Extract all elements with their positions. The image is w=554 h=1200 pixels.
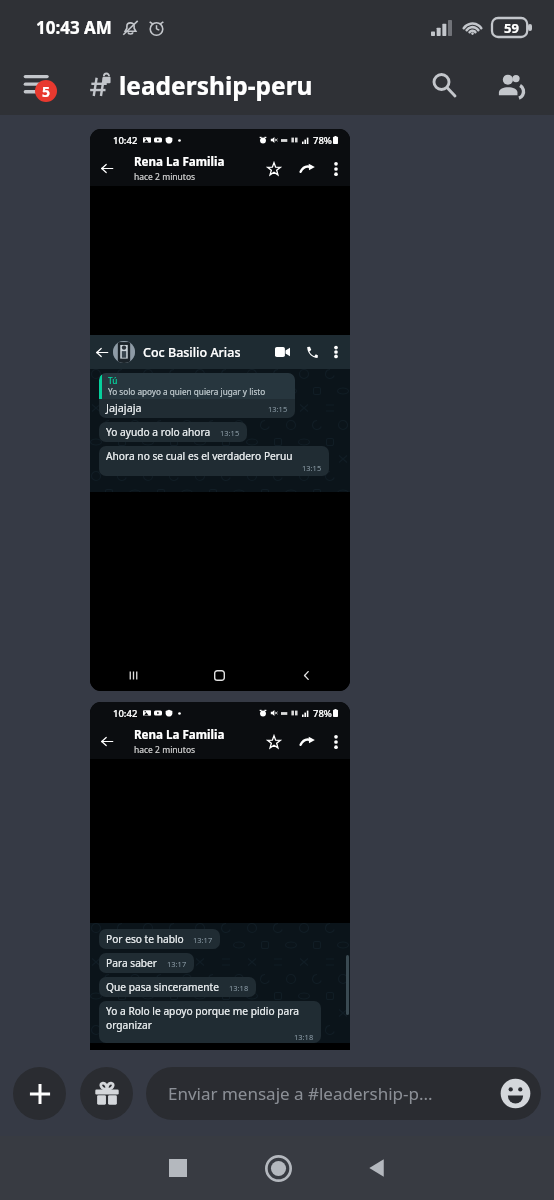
staticText: Coc Basilio Arias [143,344,241,361]
staticText: 13:17 [193,935,213,945]
button[interactable]: Back [352,1143,402,1193]
staticText: 13:15 [220,428,240,438]
staticText: hace 2 minutos [134,744,196,756]
button[interactable]: Send a gift [80,1067,133,1120]
staticText: Para saber [106,956,158,970]
staticText: Enviar mensaje a #leadership-p... [168,1082,433,1105]
staticText: Por eso te hablo [106,932,184,946]
button[interactable]: Open channels [24,63,68,107]
staticText: 13:18 [229,983,249,993]
staticText: Ahora no se cual es el verdadero Peruu [106,449,293,463]
staticText: 13:15 [302,463,322,473]
staticText: 13:18 [294,1032,314,1040]
staticText: 5 [42,82,51,101]
staticText: 59 [504,19,519,37]
button[interactable]: Recent apps [153,1143,203,1193]
button[interactable]: Members [488,63,532,107]
staticText: leadership-peru [119,69,313,102]
button[interactable]: Add attachment [13,1067,66,1120]
button[interactable]: Home [253,1143,303,1193]
staticText: 10:42 [113,707,138,720]
staticText: Rena La Familia [134,154,225,170]
staticText: 78% [313,134,332,147]
staticText: Yo a Rolo le apoyo porque me pidio para … [106,1004,314,1032]
staticText: hace 2 minutos [134,171,196,183]
staticText: 78% [313,707,332,720]
staticText: 13:17 [167,959,187,969]
staticText: Jajajaja [106,400,142,415]
staticText: Yo solo apoyo a quien quiera jugar y lis… [108,386,266,397]
button[interactable]: Enviar mensaje a #leadership-p... [146,1067,541,1120]
staticText: Yo ayudo a rolo ahora [106,425,211,439]
staticText: Tú [108,375,118,386]
staticText: Rena La Familia [134,727,225,743]
staticText: 13:15 [268,404,288,414]
button[interactable]: Image attachment [90,702,350,1050]
staticText: 10:43 AM [36,16,112,39]
staticText: Que pasa sinceramente [106,980,220,994]
button[interactable]: Image attachment [90,129,350,691]
button[interactable]: Search [422,63,466,107]
staticText: 10:42 [113,134,138,147]
